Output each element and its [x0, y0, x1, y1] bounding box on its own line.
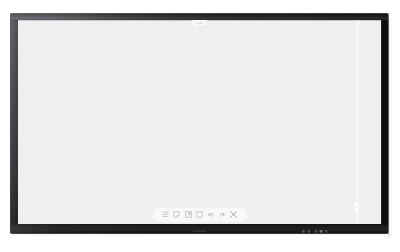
button[interactable]: Page handle [354, 202, 359, 212]
button[interactable]: Redo [217, 208, 228, 222]
button[interactable]: Menu [160, 208, 171, 222]
button[interactable]: Close toolbar [228, 208, 239, 222]
button[interactable]: New note [171, 208, 182, 222]
button[interactable]: Undo [205, 208, 216, 222]
button[interactable]: Sticky note [183, 208, 194, 222]
button[interactable]: Show top menu [192, 20, 207, 26]
button[interactable]: Shape [194, 208, 205, 222]
